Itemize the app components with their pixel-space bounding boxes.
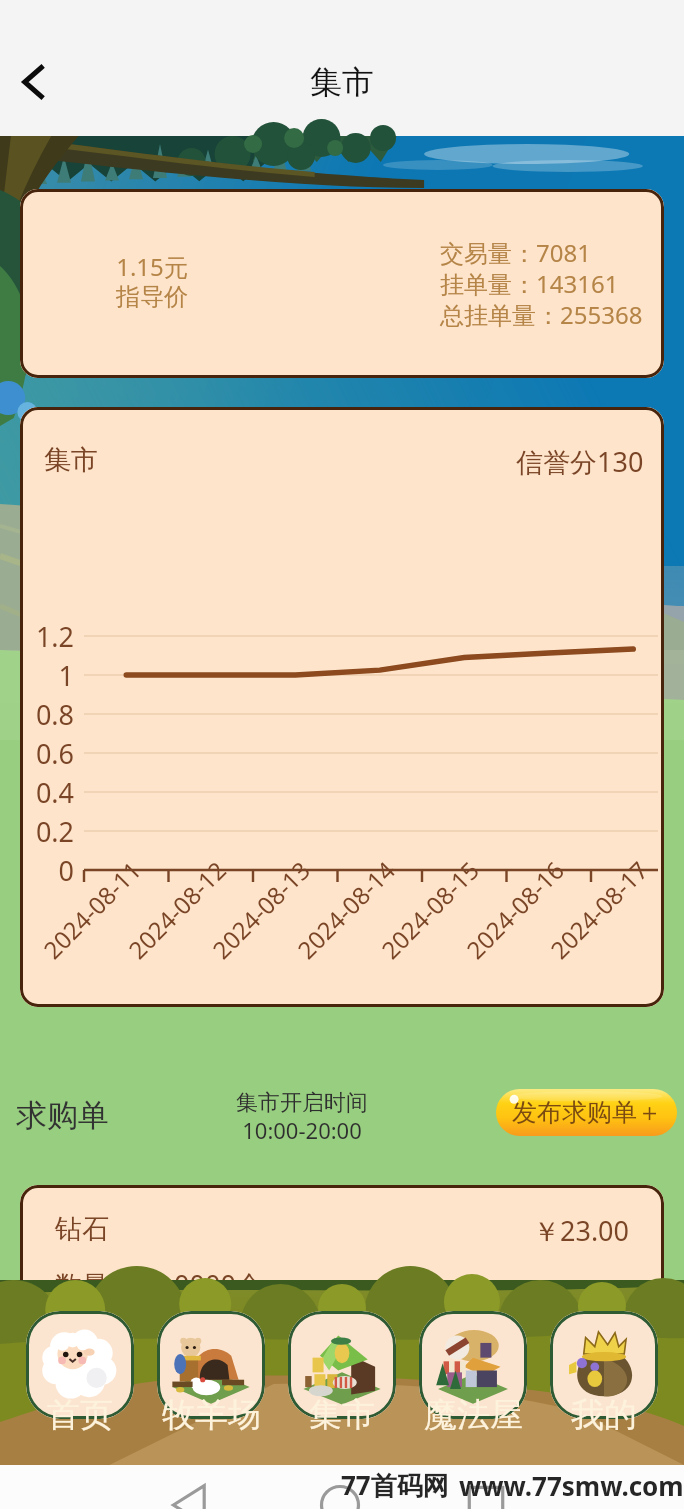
staticText: 77首码网 <box>341 1467 449 1503</box>
button[interactable]: 魔法屋 <box>419 1280 527 1465</box>
staticText: www.77smw.com <box>459 1468 684 1503</box>
staticText: 0.8 <box>20 696 74 733</box>
button[interactable]: Recent apps <box>464 1483 508 1509</box>
staticText: 1.2 <box>20 618 74 655</box>
staticText: 0.4 <box>20 774 74 811</box>
staticText: 集市 <box>310 62 374 102</box>
staticText: 集市 <box>44 443 98 477</box>
staticText: 数量：22.0000个 <box>55 1266 263 1303</box>
staticText: 2024-08-13 <box>205 853 317 966</box>
staticText: 魔法屋 <box>424 1394 523 1436</box>
staticText: 求购单 <box>16 1096 109 1135</box>
staticText: 2024-08-14 <box>290 853 402 966</box>
staticText: 1 <box>20 657 74 694</box>
staticText: 2024-08-15 <box>374 853 486 966</box>
staticText: 0 <box>20 852 74 889</box>
staticText: 2024-08-16 <box>459 853 571 966</box>
button[interactable]: 首页 <box>26 1280 134 1465</box>
button[interactable]: 集市 <box>288 1280 396 1465</box>
button[interactable]: Home <box>318 1483 362 1509</box>
staticText: 发布求购单＋ <box>512 1097 662 1128</box>
button[interactable]: 我的 <box>550 1280 658 1465</box>
staticText: 集市开启时间 10:00-20:00 <box>236 1089 368 1145</box>
staticText: 集市 <box>309 1394 375 1436</box>
staticText: 2024-08-12 <box>121 853 233 966</box>
staticText: 牧羊场 <box>162 1394 261 1436</box>
staticText: 首页 <box>47 1394 113 1436</box>
staticText: 2024-08-17 <box>543 853 655 966</box>
staticText: 1.15元 指导价 <box>116 250 188 313</box>
button[interactable]: 发布求购单＋ <box>496 1089 677 1136</box>
staticText: 0.2 <box>20 813 74 850</box>
button[interactable]: 牧羊场 <box>157 1280 265 1465</box>
button[interactable]: Back <box>169 1483 213 1509</box>
staticText: 交易量：7081 挂单量：143161 总挂单量：255368 <box>440 236 643 331</box>
staticText: 钻石 <box>55 1212 109 1246</box>
staticText: ￥23.00 <box>533 1212 630 1249</box>
staticText: 信誉分130 <box>516 443 644 480</box>
button[interactable]: Back <box>2 51 64 113</box>
staticText: 我的 <box>571 1394 637 1436</box>
staticText: 2024-08-11 <box>36 853 148 966</box>
staticText: 0.6 <box>20 735 74 772</box>
